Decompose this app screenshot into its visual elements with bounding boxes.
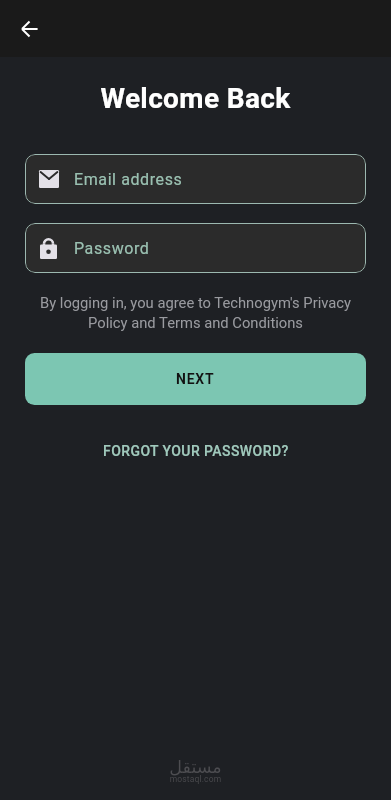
button[interactable]: Password	[25, 223, 366, 273]
staticText: By logging in, you agree to Technogym's …	[36, 294, 355, 331]
staticText: مستقل	[0, 757, 391, 777]
staticText: Email address	[74, 170, 183, 189]
staticText: mostaql.com	[0, 774, 391, 784]
button[interactable]: FORGOT YOUR PASSWORD?	[89, 436, 303, 466]
staticText: Password	[74, 239, 150, 258]
staticText: Welcome Back	[0, 82, 391, 115]
staticText: FORGOT YOUR PASSWORD?	[103, 443, 289, 459]
button[interactable]: NEXT	[25, 353, 366, 405]
button[interactable]: Back	[13, 12, 46, 45]
staticText: NEXT	[176, 371, 215, 387]
button[interactable]: Email address	[25, 154, 366, 204]
